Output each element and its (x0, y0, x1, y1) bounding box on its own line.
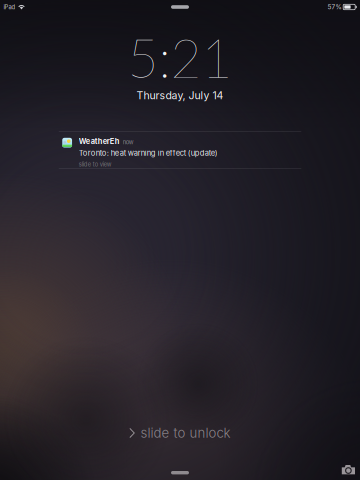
staticText: 5:21 (127, 25, 232, 89)
staticText: slide to unlock (140, 425, 230, 441)
staticText: Thursday, July 14 (136, 89, 223, 102)
button[interactable]: Camera (342, 465, 355, 474)
staticText: slide to view (79, 161, 112, 168)
staticText: now (123, 138, 134, 146)
staticText: Toronto: heat warning in effect (update) (79, 148, 218, 158)
button[interactable]: WeatherEh (59, 131, 301, 169)
staticText: WeatherEh (79, 137, 120, 146)
staticText: 57% (327, 3, 341, 11)
staticText: iPad (3, 3, 15, 11)
